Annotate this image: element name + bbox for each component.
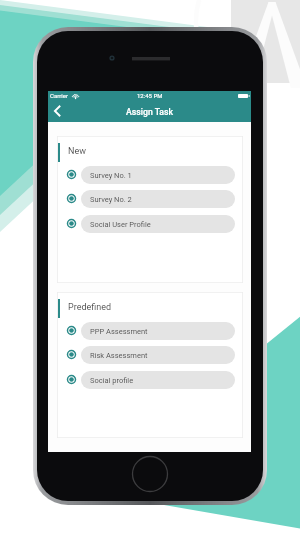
button[interactable]: Social User Profile (66, 213, 235, 234)
staticText: Survey No. 2 (90, 195, 132, 204)
staticText: Survey No. 1 (90, 171, 132, 180)
staticText: New (68, 146, 86, 157)
button[interactable]: Survey No. 1 (66, 164, 235, 185)
staticText: Risk Assessment (90, 351, 148, 360)
button[interactable]: Social profile (66, 369, 235, 390)
button[interactable]: Risk Assessment (66, 344, 235, 365)
button[interactable]: PPP Assessment (66, 320, 235, 341)
staticText: Predefined (68, 302, 112, 313)
button[interactable]: Back (48, 100, 68, 122)
button[interactable]: Survey No. 2 (66, 188, 235, 209)
staticText: Carrier (50, 92, 68, 99)
staticText: PPP Assessment (90, 327, 148, 336)
staticText: Assign Task (126, 107, 173, 117)
staticText: Social User Profile (90, 220, 151, 229)
staticText: Social profile (90, 376, 134, 385)
staticText: 12:45 PM (137, 92, 163, 99)
